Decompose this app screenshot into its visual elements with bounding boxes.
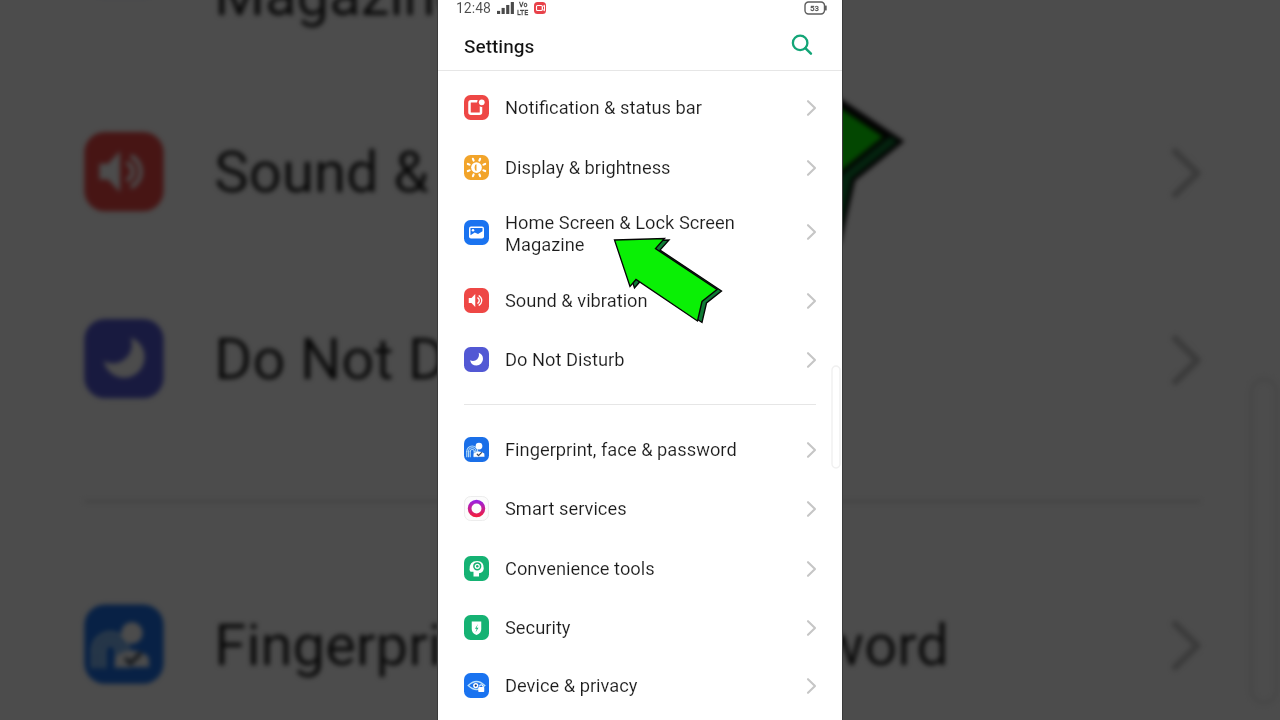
button[interactable]: Smart services — [438, 479, 842, 538]
staticText: Home Screen & Lock Screen — [505, 212, 735, 233]
staticText: Display & brightness — [505, 157, 671, 178]
staticText: Fingerprint, face & password — [505, 439, 737, 460]
staticText: 12:48 — [456, 0, 491, 16]
staticText: Sound & vibration — [214, 138, 668, 205]
button[interactable]: Home Screen & Lock Screen — [438, 196, 842, 268]
staticText: Convenience tools — [505, 558, 655, 579]
staticText: Smart services — [505, 498, 627, 519]
staticText: Settings — [464, 35, 535, 57]
button[interactable]: Display & brightness — [438, 138, 842, 197]
button[interactable]: Security — [438, 598, 842, 657]
staticText: Notification & status bar — [505, 97, 702, 118]
staticText: 53 — [810, 4, 820, 13]
button[interactable]: Search — [786, 29, 820, 63]
staticText: Security — [505, 617, 571, 638]
button[interactable]: Do Not Disturb — [438, 330, 842, 389]
button[interactable]: Fingerprint, face & password — [438, 420, 842, 479]
button[interactable]: Convenience tools — [438, 539, 842, 598]
staticText: Do Not Disturb — [505, 349, 625, 370]
staticText: Do Not Disturb — [214, 325, 595, 392]
button[interactable]: Notification & status bar — [438, 78, 842, 137]
button[interactable]: Sound & vibration — [438, 271, 842, 330]
staticText: Device & privacy — [505, 675, 638, 696]
staticText: Sound & vibration — [505, 290, 648, 311]
staticText: Magazine — [505, 234, 585, 255]
staticText: Fingerprint, face & password — [214, 611, 950, 677]
staticText: Vo — [519, 1, 528, 9]
button[interactable]: Device & privacy — [438, 656, 842, 715]
staticText: LTE — [517, 9, 529, 16]
staticText: Magazine — [214, 0, 468, 27]
